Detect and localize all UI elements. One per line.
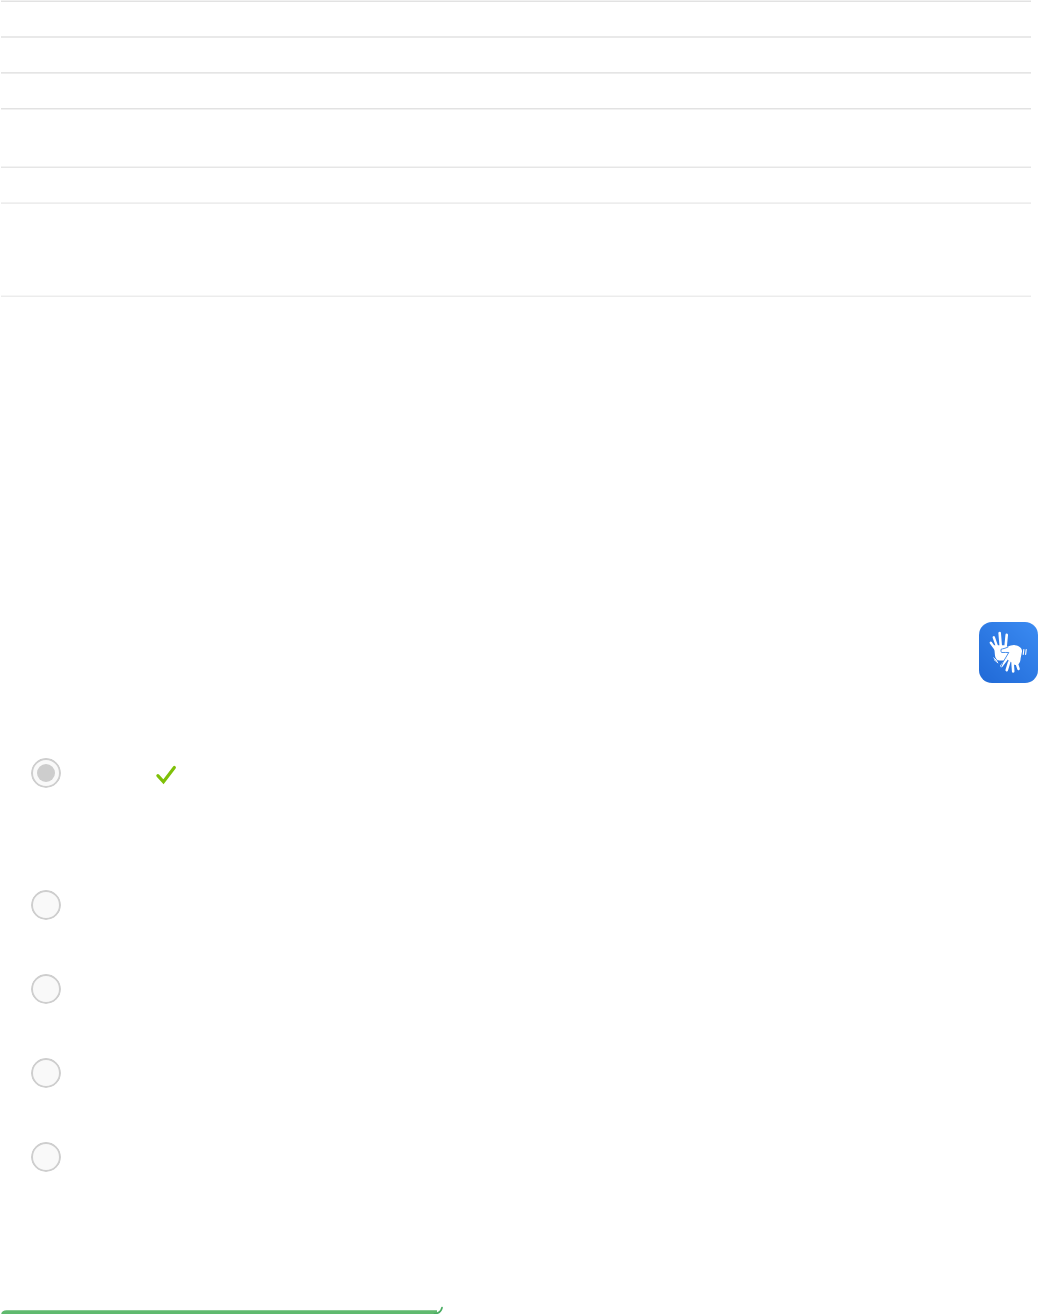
button[interactable]: Option 4	[31, 1058, 61, 1088]
button[interactable]: Option 3	[31, 974, 61, 1004]
button[interactable]: Option 1	[31, 758, 61, 788]
button[interactable]: Verified	[151, 759, 181, 789]
button[interactable]: Option 5	[31, 1142, 61, 1172]
button[interactable]: Option 2	[31, 890, 61, 920]
button[interactable]: Sign language interpretation	[979, 622, 1038, 683]
button[interactable]	[0, 1300, 448, 1314]
